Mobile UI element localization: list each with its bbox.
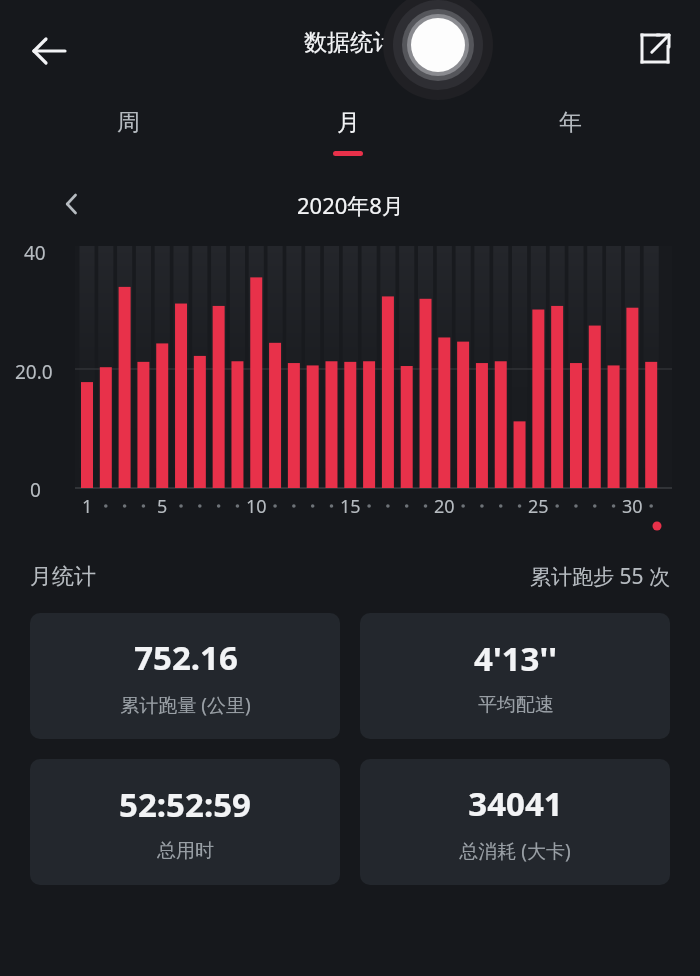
button[interactable]: Back <box>18 20 80 82</box>
staticText: 周 <box>117 108 140 137</box>
staticText: 累计跑步 55 次 <box>530 562 670 591</box>
staticText: 0 <box>30 477 41 503</box>
staticText: 月 <box>337 108 360 137</box>
staticText: 5 <box>157 494 168 519</box>
button[interactable]: 年 <box>520 100 620 172</box>
staticText: 累计跑量 (公里) <box>120 692 251 718</box>
button[interactable]: 4'13'' <box>360 613 670 739</box>
staticText: 4'13'' <box>474 636 557 681</box>
staticText: 年 <box>559 108 582 137</box>
staticText: 月统计 <box>30 563 96 591</box>
button[interactable]: 34041 <box>360 759 670 885</box>
button[interactable]: Previous month <box>46 178 98 230</box>
staticText: 2020年8月 <box>297 190 404 220</box>
button[interactable]: 752.16 <box>30 613 340 739</box>
staticText: 1 <box>82 494 93 519</box>
staticText: 20.0 <box>15 359 53 385</box>
staticText: 34041 <box>468 781 563 826</box>
staticText: 数据统计 <box>304 28 396 57</box>
staticText: 15 <box>340 494 361 519</box>
staticText: 40 <box>24 240 46 266</box>
staticText: 52:52:59 <box>119 782 251 827</box>
button[interactable]: 52:52:59 <box>30 759 340 885</box>
staticText: 752.16 <box>134 635 238 680</box>
staticText: 20 <box>434 494 455 519</box>
staticText: 总消耗 (大卡) <box>459 838 571 864</box>
staticText: 10 <box>246 494 267 519</box>
staticText: 30 <box>622 494 643 519</box>
staticText: 总用时 <box>157 839 214 863</box>
staticText: 25 <box>528 494 549 519</box>
button[interactable]: Share <box>624 18 686 80</box>
staticText: 平均配速 <box>478 693 554 717</box>
button[interactable]: 月 <box>298 100 398 172</box>
button[interactable]: 周 <box>78 100 178 172</box>
